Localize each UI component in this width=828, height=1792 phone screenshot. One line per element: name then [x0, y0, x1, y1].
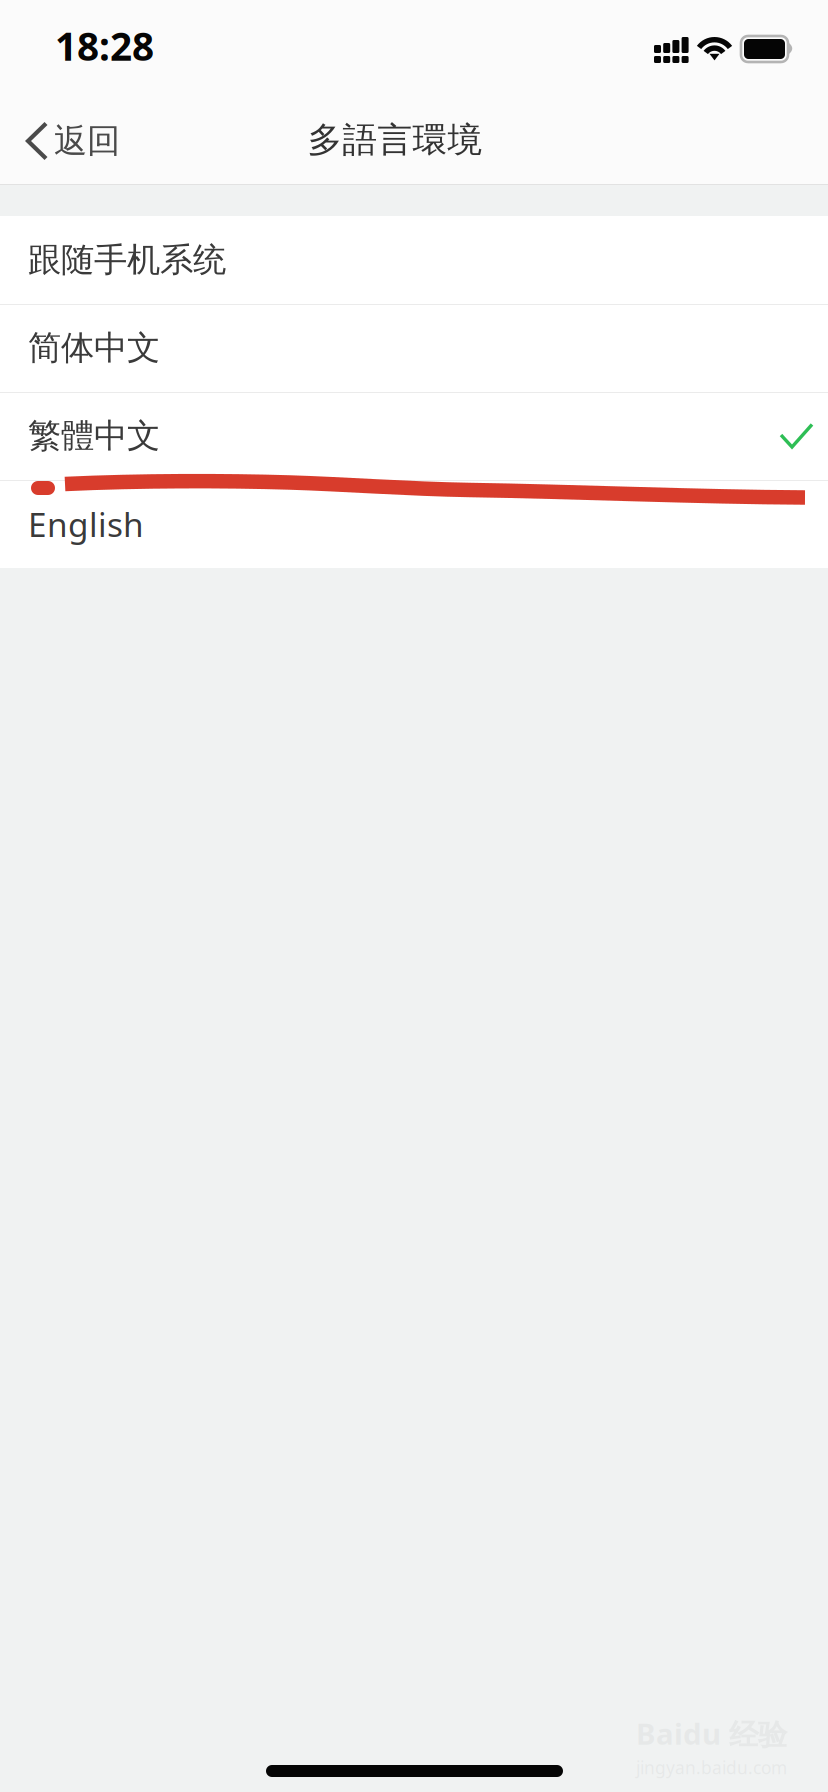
button[interactable]: 返回 [0, 92, 142, 184]
staticText: English [28, 502, 144, 546]
staticText: 简体中文 [28, 327, 160, 368]
staticText: jingyan.baidu.com [636, 1756, 787, 1779]
staticText: 繁體中文 [28, 415, 160, 456]
button[interactable]: 简体中文 [0, 304, 828, 392]
button[interactable]: 跟随手机系统 [0, 216, 828, 304]
button[interactable]: 繁體中文 [0, 392, 828, 480]
button[interactable]: English [0, 480, 828, 568]
staticText: Baidu 经验 [636, 1714, 787, 1753]
staticText: 多語言環境 [307, 119, 482, 161]
staticText: 返回 [54, 120, 120, 161]
staticText: 18:28 [55, 20, 154, 71]
staticText: 跟随手机系统 [28, 239, 226, 280]
